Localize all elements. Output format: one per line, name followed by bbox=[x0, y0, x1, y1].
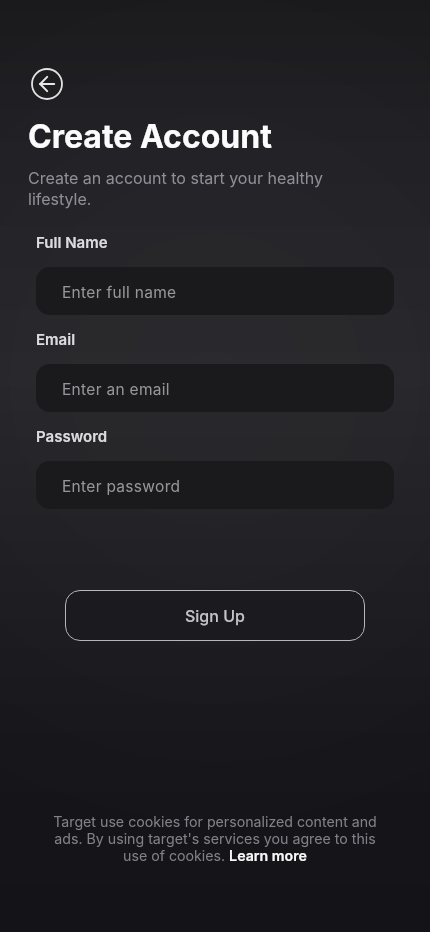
button[interactable]: Sign Up bbox=[65, 590, 365, 641]
button[interactable]: use of cookies. Learn more bbox=[123, 847, 307, 864]
button[interactable] bbox=[31, 68, 63, 100]
staticText: Enter an email bbox=[62, 380, 170, 399]
button[interactable]: Enter full name bbox=[36, 267, 394, 315]
staticText: Full Name bbox=[36, 233, 108, 251]
staticText: Email bbox=[36, 330, 76, 348]
staticText: Create an account to start your healthy … bbox=[28, 168, 323, 209]
button[interactable]: Enter password bbox=[36, 461, 394, 509]
staticText: Password bbox=[36, 427, 108, 445]
staticText: ads. By using target's services you agre… bbox=[54, 830, 376, 847]
button[interactable]: Enter an email bbox=[36, 364, 394, 412]
staticText: Enter full name bbox=[62, 283, 177, 302]
staticText: Sign Up bbox=[185, 606, 245, 625]
staticText: Create Account bbox=[28, 117, 272, 156]
staticText: Target use cookies for personalized cont… bbox=[53, 813, 377, 830]
staticText: Enter password bbox=[62, 477, 181, 496]
